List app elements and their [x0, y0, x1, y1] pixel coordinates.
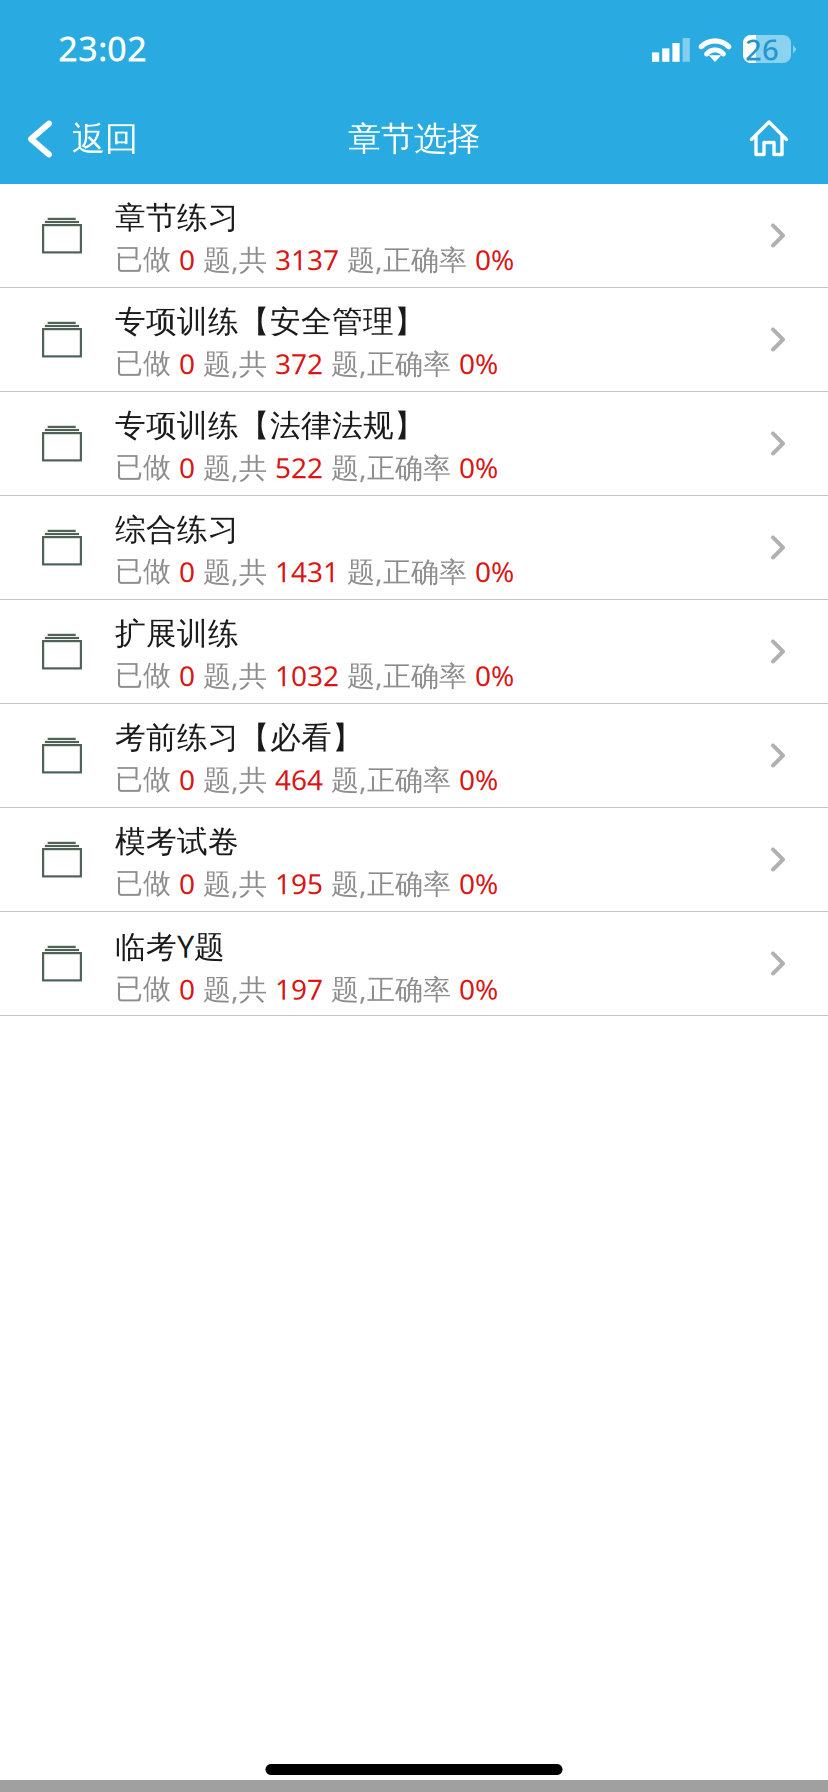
staticText: 已做 [115, 866, 179, 900]
staticText: 0 [179, 865, 195, 902]
staticText: 题,共 [195, 449, 275, 486]
staticText: 题,共 [195, 553, 275, 590]
staticText: 题,正确率 [323, 865, 459, 902]
staticText: 0% [475, 241, 514, 278]
staticText: 综合练习 [115, 511, 239, 549]
staticText: 0% [459, 449, 498, 486]
staticText: 题,共 [195, 657, 275, 694]
staticText: 0 [179, 970, 195, 1007]
staticText: 扩展训练 [115, 615, 239, 653]
button[interactable]: 扩展训练 [0, 600, 828, 703]
staticText: 已做 [115, 450, 179, 484]
staticText: 26 [745, 29, 779, 68]
button[interactable]: 专项训练【法律法规】 [0, 392, 828, 495]
button[interactable]: 综合练习 [0, 496, 828, 599]
staticText: 题,正确率 [339, 241, 475, 278]
staticText: 专项训练【安全管理】 [115, 303, 425, 341]
staticText: 464 [275, 761, 323, 798]
staticText: 题,正确率 [323, 449, 459, 486]
staticText: 已做 [115, 762, 179, 796]
staticText: 0 [179, 345, 195, 382]
staticText: 题,正确率 [339, 657, 475, 694]
staticText: 已做 [115, 658, 179, 692]
staticText: 0% [475, 553, 514, 590]
staticText: 题,正确率 [339, 553, 475, 590]
staticText: 题,正确率 [323, 970, 459, 1007]
staticText: 195 [275, 865, 323, 902]
staticText: 0 [179, 761, 195, 798]
staticText: 章节练习 [115, 199, 239, 237]
button[interactable]: 模考试卷 [0, 808, 828, 911]
staticText: 1431 [275, 553, 339, 590]
staticText: 已做 [115, 972, 179, 1006]
staticText: 模考试卷 [115, 823, 239, 861]
button[interactable]: 返回 [0, 88, 160, 184]
staticText: 0% [459, 345, 498, 382]
staticText: 已做 [115, 242, 179, 276]
staticText: 3137 [275, 241, 339, 278]
staticText: 题,共 [195, 970, 275, 1007]
staticText: 题,共 [195, 865, 275, 902]
staticText: 0% [475, 657, 514, 694]
button[interactable]: 临考Y题 [0, 912, 828, 1015]
staticText: 0% [459, 865, 498, 902]
staticText: 0% [459, 761, 498, 798]
button[interactable]: 专项训练【安全管理】 [0, 288, 828, 391]
staticText: 题,共 [195, 761, 275, 798]
staticText: 已做 [115, 346, 179, 380]
staticText: 0 [179, 241, 195, 278]
staticText: 题,正确率 [323, 345, 459, 382]
staticText: 返回 [72, 118, 138, 159]
button[interactable]: 考前练习【必看】 [0, 704, 828, 807]
staticText: 章节选择 [348, 118, 480, 159]
button[interactable]: 章节练习 [0, 184, 828, 287]
staticText: 已做 [115, 554, 179, 588]
staticText: 372 [275, 345, 323, 382]
staticText: 题,共 [195, 241, 275, 278]
staticText: 题,正确率 [323, 761, 459, 798]
staticText: 1032 [275, 657, 339, 694]
staticText: 临考Y题 [115, 925, 225, 966]
button[interactable]: Home [726, 88, 828, 184]
staticText: 0 [179, 657, 195, 694]
staticText: 题,共 [195, 345, 275, 382]
staticText: 23:02 [58, 25, 147, 71]
staticText: 0 [179, 449, 195, 486]
staticText: 专项训练【法律法规】 [115, 407, 425, 445]
staticText: 522 [275, 449, 323, 486]
staticText: 0% [459, 970, 498, 1007]
staticText: 0 [179, 553, 195, 590]
staticText: 考前练习【必看】 [115, 719, 363, 757]
staticText: 197 [275, 970, 323, 1007]
